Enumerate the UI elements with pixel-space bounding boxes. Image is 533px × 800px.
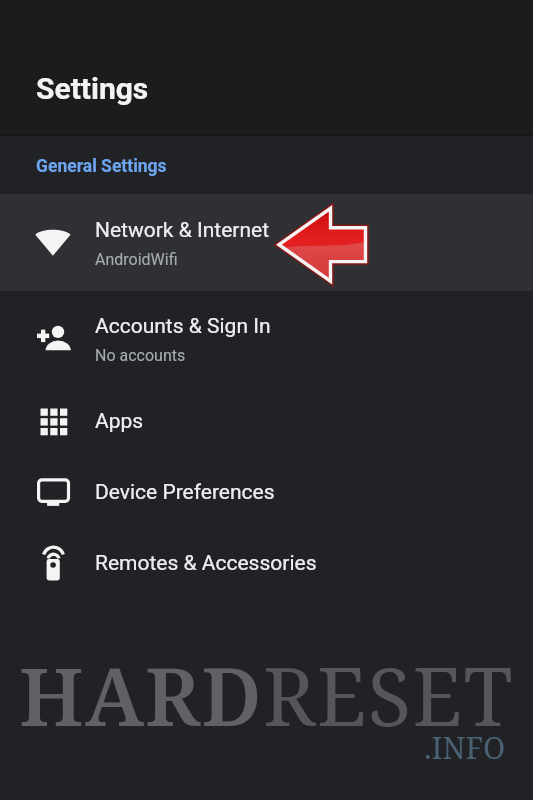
staticText: General Settings — [36, 156, 167, 177]
staticText: .INFO — [424, 727, 506, 768]
staticText: RESET — [263, 640, 514, 749]
staticText: Device Preferences — [95, 480, 275, 505]
staticText: Settings — [36, 71, 149, 106]
staticText: Remotes & Accessories — [95, 551, 317, 576]
staticText: HARD — [19, 640, 263, 749]
other: Wi-Fi — [35, 228, 72, 257]
other: Device preferences — [37, 478, 72, 507]
button[interactable]: Remotes and accessories — [0, 528, 533, 599]
staticText: AndroidWifi — [95, 250, 178, 269]
button[interactable]: Device preferences — [0, 457, 533, 528]
button[interactable]: Wi-Fi — [0, 194, 533, 291]
other: Accounts — [36, 325, 72, 352]
other: Apps — [40, 408, 66, 434]
staticText: Apps — [95, 409, 144, 434]
button[interactable]: Accounts — [0, 291, 533, 387]
staticText: No accounts — [95, 346, 186, 365]
other: Remotes and accessories — [41, 545, 67, 582]
staticText: Network & Internet — [95, 218, 270, 243]
button[interactable]: Apps — [0, 387, 533, 457]
staticText: Accounts & Sign In — [95, 314, 271, 339]
